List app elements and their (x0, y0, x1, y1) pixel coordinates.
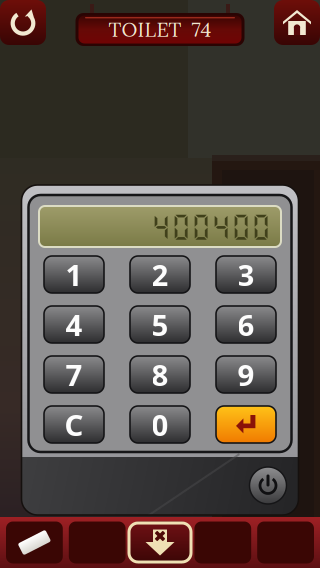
staticText: 5 (151, 305, 168, 344)
button[interactable]: 4 (44, 306, 104, 343)
button[interactable]: Home (274, 0, 320, 45)
button[interactable]: 1 (44, 256, 104, 293)
button[interactable]: 3 (216, 256, 276, 293)
staticText: 3 (237, 255, 254, 294)
button[interactable]: Paper item (6, 521, 63, 563)
button[interactable]: Enter (216, 406, 276, 443)
staticText: 400400 (151, 210, 271, 243)
staticText: 7 (65, 355, 82, 394)
button[interactable]: 7 (44, 356, 104, 393)
button[interactable]: Restart level (0, 0, 46, 45)
staticText: 6 (237, 305, 254, 344)
staticText: 4 (65, 305, 82, 344)
staticText: 1 (65, 255, 82, 294)
staticText: 0 (151, 405, 168, 444)
staticText: C (64, 405, 83, 444)
button[interactable]: 9 (216, 356, 276, 393)
button[interactable]: 6 (216, 306, 276, 343)
button[interactable]: Hide inventory (129, 523, 191, 562)
staticText: 8 (151, 355, 168, 394)
button[interactable]: 2 (130, 256, 190, 293)
staticText: 2 (151, 255, 168, 294)
button[interactable]: Empty slot (194, 521, 251, 563)
staticText: 9 (237, 355, 254, 394)
button[interactable]: Empty slot (257, 521, 314, 563)
button[interactable]: 0 (130, 406, 190, 443)
button[interactable]: 8 (130, 356, 190, 393)
staticText: TOILET 74 (108, 17, 211, 42)
button[interactable]: Empty slot (132, 521, 188, 563)
button[interactable]: Empty slot (69, 521, 126, 563)
button[interactable]: 5 (130, 306, 190, 343)
button[interactable]: Power (249, 467, 286, 504)
button[interactable]: C (44, 406, 104, 443)
